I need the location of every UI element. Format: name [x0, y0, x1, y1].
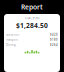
staticText: Groceries — [6, 33, 19, 36]
staticText: $264 — [50, 43, 58, 47]
staticText: Dining — [6, 43, 16, 47]
staticText: $420 — [50, 33, 58, 36]
staticText: $1,284.50 — [16, 21, 48, 30]
staticText: $180 — [50, 38, 58, 41]
staticText: Transport — [6, 38, 18, 41]
staticText: Report — [21, 3, 43, 11]
staticText: TOTAL SPENT — [24, 16, 39, 20]
